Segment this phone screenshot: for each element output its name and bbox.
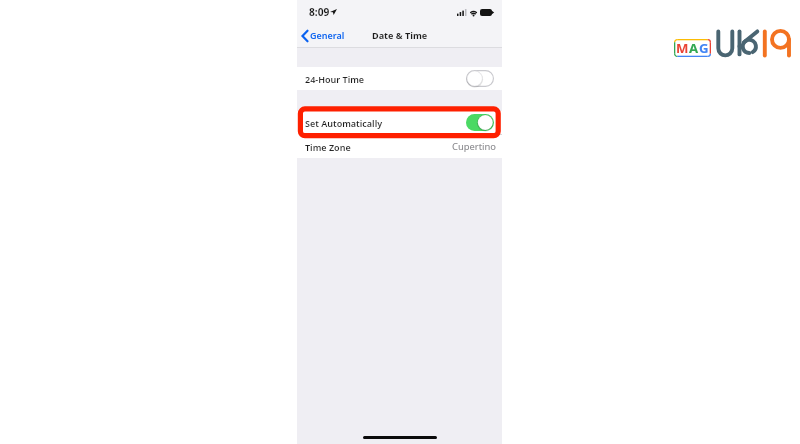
staticText: G	[699, 39, 709, 57]
staticText: Set Automatically	[305, 117, 383, 129]
staticText: A	[689, 39, 699, 57]
button[interactable]: Time Zone	[297, 135, 502, 158]
button[interactable]: Back to General	[297, 27, 349, 43]
staticText: Cupertino	[452, 140, 496, 153]
button[interactable]: 24-Hour Time	[297, 67, 502, 90]
staticText: General	[310, 29, 345, 41]
button[interactable]: Set Automatically, on	[466, 114, 494, 131]
staticText: 8:09	[309, 5, 330, 19]
staticText: Date & Time	[372, 29, 428, 41]
button[interactable]: Set Automatically	[297, 111, 502, 134]
staticText: Time Zone	[305, 141, 351, 153]
staticText: 24-Hour Time	[305, 73, 365, 85]
staticText: M	[676, 39, 689, 57]
button[interactable]: 24-Hour Time, off	[466, 70, 494, 87]
